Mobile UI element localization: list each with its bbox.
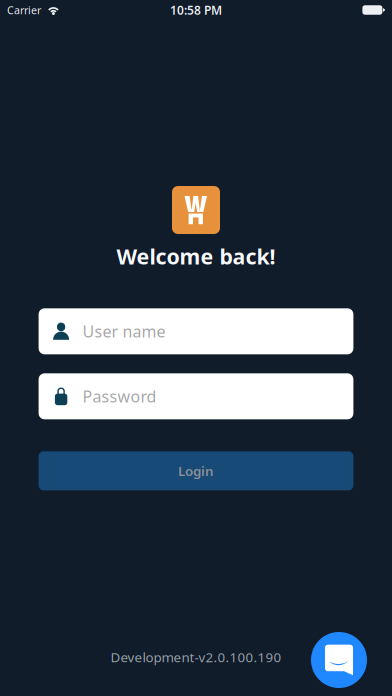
staticText: Welcome back! xyxy=(116,242,275,270)
button[interactable]: Login xyxy=(0,451,392,490)
staticText: Password xyxy=(83,386,157,407)
staticText: Carrier xyxy=(7,3,41,17)
button[interactable]: Password xyxy=(39,373,353,419)
staticText: 10:58 PM xyxy=(170,2,222,18)
staticText: User name xyxy=(83,321,166,342)
staticText: Development-v2.0.100.190 xyxy=(110,648,281,666)
staticText: Login xyxy=(178,462,214,480)
button[interactable]: User name xyxy=(39,308,353,354)
button[interactable]: Open chat support xyxy=(311,632,367,688)
